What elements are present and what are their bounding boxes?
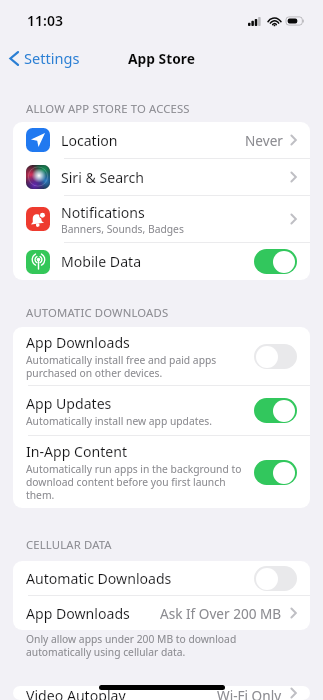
staticText: In-App Content xyxy=(26,442,128,461)
staticText: ALLOW APP STORE TO ACCESS xyxy=(26,101,190,116)
staticText: Banners, Sounds, Badges xyxy=(61,222,184,236)
staticText: Only allow apps under 200 MB to download… xyxy=(26,632,261,659)
other: Open xyxy=(290,171,297,183)
button[interactable]: Notifications xyxy=(13,196,310,242)
button[interactable]: App Updates xyxy=(13,386,310,435)
staticText: Video Autoplay xyxy=(26,686,126,700)
staticText: 11:03 xyxy=(27,11,63,30)
button[interactable]: Automatic Downloads xyxy=(13,561,310,595)
button[interactable]: Toggle xyxy=(254,398,297,423)
staticText: Automatically run apps in the background… xyxy=(26,462,250,502)
staticText: Mobile Data xyxy=(61,252,142,271)
staticText: CELLULAR DATA xyxy=(26,537,112,552)
staticText: Automatic Downloads xyxy=(26,569,172,588)
button[interactable]: App Downloads xyxy=(13,596,310,630)
staticText: Notifications xyxy=(61,203,145,222)
button[interactable]: Location xyxy=(13,122,310,158)
other: Open xyxy=(290,607,297,619)
staticText: Settings xyxy=(24,48,80,68)
staticText: Never xyxy=(245,131,283,150)
button[interactable]: In-App Content xyxy=(13,436,310,508)
button[interactable]: Toggle xyxy=(254,249,297,274)
other: Open xyxy=(290,687,297,699)
button[interactable]: Toggle xyxy=(254,566,297,591)
staticText: Location xyxy=(61,131,118,150)
staticText: App Downloads xyxy=(26,604,130,623)
button[interactable]: Mobile Data xyxy=(13,243,310,280)
other: Open xyxy=(290,213,297,225)
button[interactable]: Siri & Search xyxy=(13,159,310,195)
staticText: App Updates xyxy=(26,394,112,413)
button[interactable]: Toggle xyxy=(254,460,297,485)
staticText: Wi-Fi Only xyxy=(217,686,282,700)
button[interactable]: Toggle xyxy=(254,344,297,369)
staticText: Siri & Search xyxy=(61,168,145,187)
button[interactable]: Settings xyxy=(5,43,84,73)
staticText: App Store xyxy=(128,49,195,68)
staticText: Automatically install new app updates. xyxy=(26,414,212,428)
button[interactable]: Video Autoplay xyxy=(13,686,310,700)
button[interactable]: App Downloads xyxy=(13,327,310,385)
staticText: Ask If Over 200 MB xyxy=(160,604,282,623)
other: Open xyxy=(290,134,297,146)
staticText: Automatically install free and paid apps… xyxy=(26,353,250,380)
staticText: App Downloads xyxy=(26,333,130,352)
staticText: AUTOMATIC DOWNLOADS xyxy=(26,305,169,320)
